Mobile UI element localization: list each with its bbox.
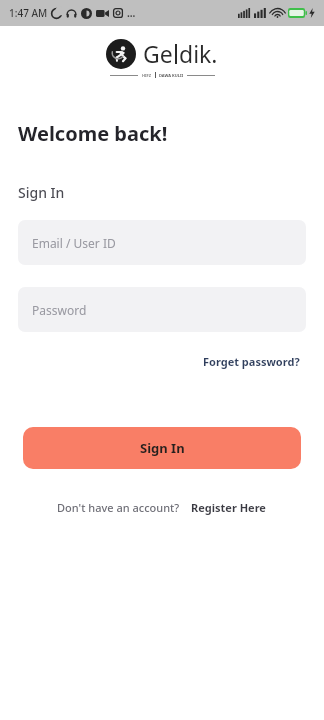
staticText: Ge [143,38,173,69]
staticText: DAWA KULII [159,73,183,78]
staticText: Sign In [140,439,185,457]
staticText: HIFZ [142,73,152,78]
button[interactable]: Email / User ID [18,220,306,265]
staticText: Forget password? [203,354,300,369]
button[interactable]: Forget password? [201,351,302,372]
staticText: Welcome back! [18,120,168,147]
button[interactable]: Password [18,287,306,332]
button[interactable]: Sign In [23,427,301,469]
other: Geldik logo [111,44,131,64]
staticText: Register Here [191,500,266,515]
staticText: Sign In [18,183,65,202]
staticText: 1:47 AM [9,6,48,20]
staticText: Don't have an account? [57,500,180,515]
staticText: ... [127,6,136,20]
button[interactable]: Register Here [189,497,268,518]
staticText: dik. [179,38,218,69]
staticText: Email / User ID [32,235,116,251]
staticText: Password [32,302,87,318]
